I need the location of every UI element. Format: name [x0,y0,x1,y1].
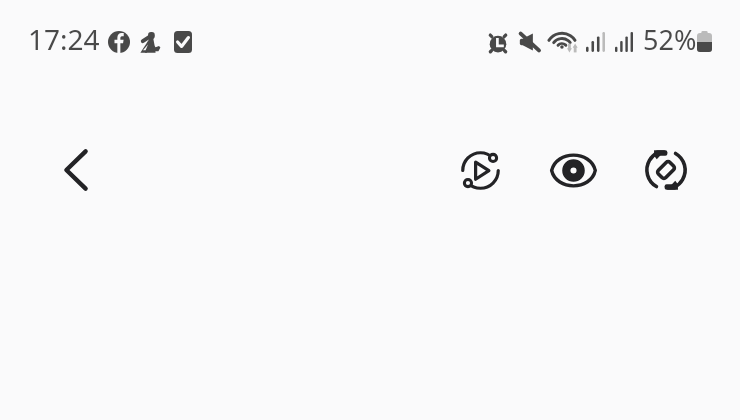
button[interactable]: Rotate screen [642,146,690,194]
button[interactable]: Back [52,146,100,194]
staticText: 17:24 [28,20,100,58]
button[interactable]: Motion photo [456,146,504,194]
staticText: 52% [643,21,697,58]
button[interactable]: Preview [549,146,597,194]
